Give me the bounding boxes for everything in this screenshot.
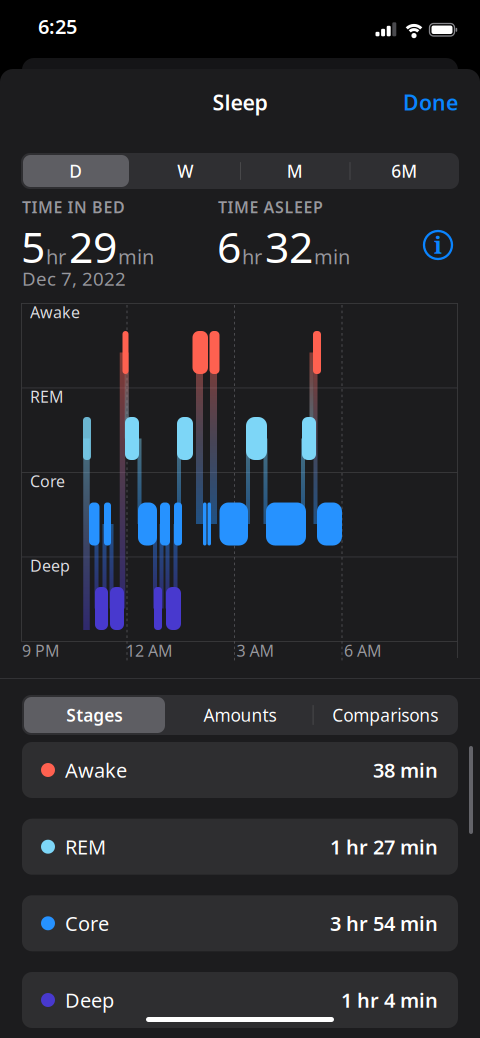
staticText: Deep	[30, 555, 70, 576]
staticText: Sleep	[212, 88, 267, 116]
button[interactable]: D	[21, 153, 130, 189]
staticText: Core	[30, 470, 65, 492]
staticText: TIME ASLEEP	[218, 196, 323, 218]
staticText: 9 PM	[22, 640, 60, 661]
staticText: 5	[21, 218, 45, 275]
staticText: 3 AM	[236, 640, 274, 661]
staticText: 1 hr 4 min	[341, 987, 438, 1013]
button[interactable]: 6M	[349, 153, 459, 189]
staticText: hr	[46, 243, 66, 270]
staticText: REM	[65, 833, 106, 860]
staticText: Stages	[66, 703, 123, 726]
staticText: 6:25	[38, 13, 77, 40]
staticText: 6M	[391, 159, 417, 182]
staticText: Deep	[65, 987, 114, 1013]
staticText: D	[69, 159, 82, 182]
button[interactable]: M	[240, 153, 349, 189]
staticText: M	[287, 159, 303, 182]
button[interactable]: i	[422, 229, 454, 261]
staticText: TIME IN BED	[22, 196, 125, 218]
staticText: 12 AM	[126, 640, 173, 661]
staticText: W	[177, 159, 193, 182]
staticText: REM	[30, 386, 64, 407]
staticText: 29	[69, 218, 117, 275]
staticText: Comparisons	[332, 703, 438, 726]
staticText: Amounts	[203, 703, 276, 726]
button[interactable]: W	[130, 153, 240, 189]
staticText: 6	[217, 218, 241, 275]
staticText: 32	[265, 218, 313, 275]
staticText: 6 AM	[344, 640, 382, 661]
staticText: Done	[403, 88, 458, 116]
button[interactable]: Amounts	[167, 695, 313, 735]
staticText: 1 hr 27 min	[330, 833, 438, 860]
staticText: 3 hr 54 min	[330, 910, 438, 937]
staticText: i	[434, 230, 442, 260]
staticText: Awake	[30, 301, 80, 323]
staticText: min	[314, 243, 350, 270]
staticText: Awake	[65, 757, 127, 783]
staticText: hr	[242, 243, 262, 270]
button[interactable]: Comparisons	[313, 695, 458, 735]
button[interactable]: Done	[378, 88, 458, 116]
staticText: min	[118, 243, 154, 270]
button[interactable]: Stages	[22, 695, 167, 735]
staticText: 38 min	[373, 757, 438, 783]
staticText: Core	[65, 910, 109, 937]
staticText: Dec 7, 2022	[22, 266, 126, 291]
